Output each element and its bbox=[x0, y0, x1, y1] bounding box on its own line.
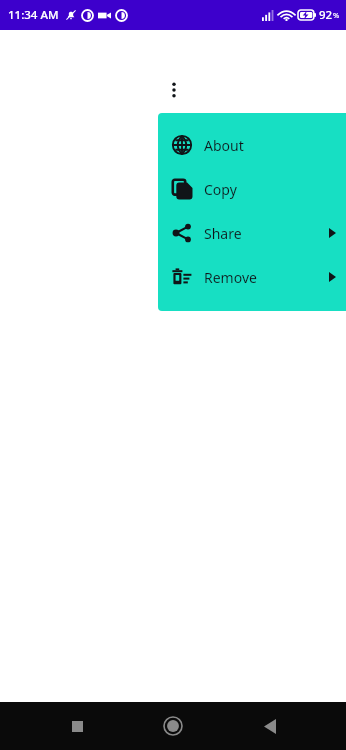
button[interactable]: Back bbox=[250, 706, 290, 746]
staticText: 92 bbox=[319, 7, 333, 23]
button[interactable]: Copy bbox=[158, 167, 346, 211]
staticText: % bbox=[333, 10, 340, 20]
button[interactable]: Remove bbox=[158, 255, 346, 299]
staticText: Remove bbox=[204, 268, 257, 287]
button[interactable]: Recent apps bbox=[57, 706, 97, 746]
button[interactable]: Home bbox=[153, 706, 193, 746]
staticText: Copy bbox=[204, 180, 237, 199]
button[interactable]: About bbox=[158, 123, 346, 167]
staticText: Share bbox=[204, 224, 242, 243]
button[interactable]: Share bbox=[158, 211, 346, 255]
staticText: About bbox=[204, 136, 244, 155]
button[interactable]: More options bbox=[162, 78, 186, 102]
staticText: 11:34 AM bbox=[8, 7, 59, 23]
